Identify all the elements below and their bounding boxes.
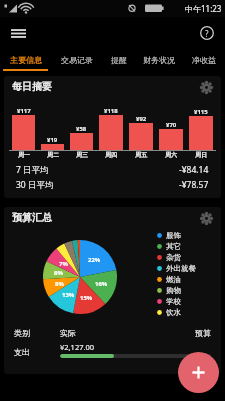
staticText: -¥78.57 (179, 179, 209, 191)
staticText: 6月25 (60, 359, 211, 367)
button[interactable]: 主要信息 (0, 48, 51, 71)
staticText: 支出 (14, 347, 30, 357)
staticText: 15% (80, 294, 93, 302)
staticText: 7% (59, 260, 68, 268)
staticText: ? (205, 28, 209, 39)
staticText: 每日摘要 (12, 80, 52, 93)
staticText: 交易记录 (61, 55, 93, 65)
staticText: 实际 (60, 328, 76, 338)
staticText: 周五 (135, 151, 147, 159)
staticText: 预算 (195, 328, 211, 338)
staticText: 周三 (76, 151, 88, 159)
staticText: 购物 (166, 286, 181, 295)
staticText: 主要信息 (10, 55, 42, 65)
staticText: 8% (54, 269, 63, 277)
staticText: 财务状况 (143, 55, 175, 65)
staticText: 周四 (105, 151, 117, 159)
staticText: ¥115 (194, 108, 208, 116)
staticText: ¥92 (136, 115, 147, 123)
staticText: 中午11:23 (185, 3, 222, 14)
staticText: 7 日平均 (16, 164, 49, 176)
staticText: 燃油 (166, 275, 181, 284)
staticText: 提醒 (111, 55, 127, 65)
staticText: 学校 (166, 297, 181, 306)
staticText: -¥84.14 (179, 164, 209, 176)
button[interactable]: 净收益 (183, 48, 225, 71)
staticText: ¥2,127.00 (60, 342, 95, 352)
staticText: 8% (55, 280, 64, 288)
staticText: ¥58 (76, 125, 87, 133)
staticText: 周日 (195, 151, 207, 159)
staticText: ¥117 (17, 107, 31, 115)
staticText: 周二 (47, 151, 59, 159)
staticText: 类别 (14, 328, 30, 338)
staticText: 13% (62, 291, 75, 299)
staticText: 外出就餐 (166, 264, 196, 273)
staticText: 预算汇总 (12, 211, 52, 224)
staticText: ¥118 (104, 107, 118, 115)
staticText: 其它 (166, 242, 181, 251)
button[interactable]: Menu (7, 22, 29, 44)
staticText: 服饰 (166, 231, 181, 240)
staticText: 杂货 (166, 253, 181, 262)
staticText: 饮水 (166, 308, 181, 317)
staticText: 净收益 (192, 55, 216, 65)
staticText: ¥70 (166, 121, 177, 129)
button[interactable]: 财务状况 (134, 48, 183, 71)
staticText: ¥19 (47, 136, 58, 144)
button[interactable]: 交易记录 (51, 48, 103, 71)
button[interactable]: Settings (197, 209, 215, 227)
button[interactable]: 提醒 (103, 48, 134, 71)
staticText: 周六 (165, 151, 177, 159)
button[interactable]: Settings (197, 78, 215, 96)
button[interactable]: Help (196, 22, 218, 44)
staticText: 30 日平均 (16, 179, 54, 191)
staticText: 周一 (18, 151, 30, 159)
staticText: 16% (95, 280, 108, 288)
button[interactable]: Add (178, 352, 219, 393)
staticText: 22% (88, 256, 101, 264)
